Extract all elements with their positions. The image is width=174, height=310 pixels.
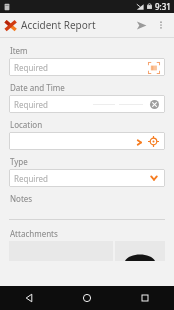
button[interactable]: Required (9, 169, 165, 187)
button[interactable]: Required (9, 58, 165, 76)
button[interactable]: Back (0, 286, 58, 310)
button[interactable]: Recent apps (116, 286, 174, 310)
button[interactable]: Choose location (134, 137, 144, 147)
staticText: Type (10, 156, 28, 167)
button[interactable]: Attachment photo (115, 241, 165, 261)
button[interactable]: App logo (4, 19, 17, 32)
button[interactable]: Use current location (147, 135, 160, 148)
staticText: 9:31 (155, 1, 171, 12)
staticText: Required (14, 99, 48, 110)
button[interactable]: Home (58, 286, 116, 310)
staticText: Notes (10, 193, 33, 204)
button[interactable] (9, 206, 165, 220)
staticText: Item (10, 45, 28, 56)
button[interactable]: Scan barcode (147, 61, 160, 74)
button[interactable]: More options (152, 16, 170, 34)
button[interactable]: Send (130, 14, 152, 36)
button[interactable]: Select type (148, 172, 160, 184)
staticText: Attachments (10, 228, 58, 239)
staticText: Date and Time (10, 82, 65, 93)
staticText: Required (14, 173, 48, 184)
button[interactable]: Required (9, 95, 165, 113)
staticText: Accident Report (21, 18, 96, 32)
button[interactable]: Choose location (9, 132, 165, 150)
staticText: Location (10, 119, 43, 130)
staticText: Required (14, 62, 48, 73)
button[interactable]: Clear (148, 98, 160, 110)
